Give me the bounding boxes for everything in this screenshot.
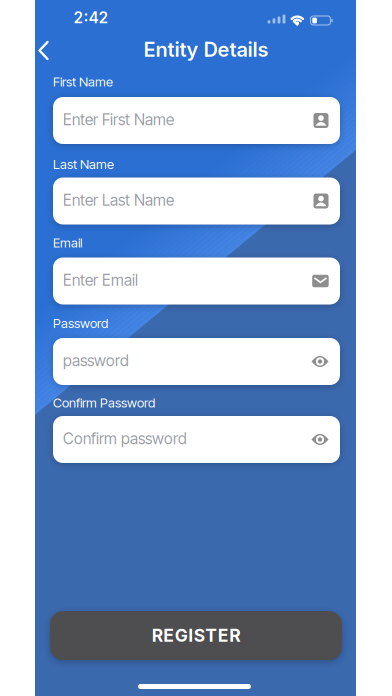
staticText: Enter Email	[63, 271, 138, 289]
staticText: Confirm Password	[53, 395, 155, 411]
staticText: 2:42	[73, 8, 108, 27]
staticText: password	[63, 351, 129, 370]
button[interactable]: Enter Last Name	[53, 177, 340, 224]
staticText: Enter First Name	[63, 110, 174, 129]
button[interactable]: Enter Email	[53, 257, 340, 304]
staticText: REGISTER	[152, 625, 240, 646]
staticText: Enter Last Name	[63, 191, 174, 209]
staticText: Last Name	[53, 156, 114, 172]
button[interactable]: REGISTER	[50, 611, 342, 660]
button[interactable]: password	[53, 338, 340, 385]
button[interactable]: Enter First Name	[53, 97, 340, 144]
staticText: Password	[53, 315, 108, 331]
staticText: First Name	[53, 74, 113, 90]
staticText: Entity Details	[143, 37, 268, 62]
staticText: Email	[53, 235, 82, 251]
button[interactable]: Confirm password	[53, 416, 340, 463]
staticText: Confirm password	[63, 429, 187, 448]
